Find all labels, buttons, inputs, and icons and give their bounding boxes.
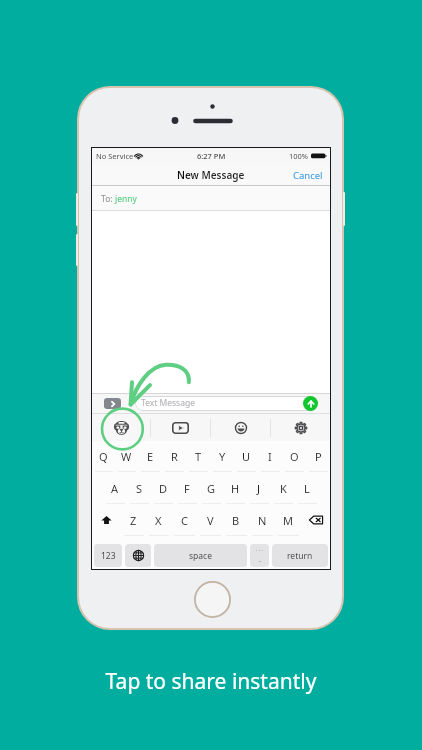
- button[interactable]: I: [258, 441, 282, 472]
- staticText: Y: [219, 449, 226, 464]
- button[interactable]: T: [186, 441, 210, 472]
- staticText: B: [232, 513, 240, 528]
- button[interactable]: G: [199, 472, 223, 504]
- staticText: V: [207, 513, 214, 528]
- staticText: N: [258, 513, 267, 528]
- staticText: J: [257, 481, 261, 496]
- button[interactable]: O: [282, 441, 306, 472]
- button[interactable]: Shift: [92, 504, 121, 536]
- staticText: F: [184, 481, 190, 496]
- staticText: R: [171, 449, 178, 464]
- staticText: O: [290, 449, 299, 464]
- button[interactable]: U: [234, 441, 258, 472]
- button[interactable]: Cancel: [286, 164, 330, 186]
- staticText: K: [280, 481, 287, 496]
- button[interactable]: C: [171, 504, 197, 536]
- button[interactable]: More: [250, 544, 269, 567]
- staticText: jenny: [115, 193, 137, 205]
- button[interactable]: Show apps: [104, 398, 121, 409]
- button[interactable]: M: [275, 504, 301, 536]
- button[interactable]: L: [295, 472, 319, 504]
- button[interactable]: Emoji: [211, 414, 270, 441]
- staticText: T: [195, 449, 202, 464]
- button[interactable]: K: [271, 472, 295, 504]
- button[interactable]: return: [272, 544, 328, 567]
- button[interactable]: Y: [210, 441, 234, 472]
- button[interactable]: E: [138, 441, 162, 472]
- button[interactable]: space: [154, 544, 247, 567]
- button[interactable]: S: [127, 472, 151, 504]
- staticText: return: [287, 550, 313, 562]
- staticText: H: [231, 481, 240, 496]
- staticText: 6:27 PM: [197, 151, 226, 161]
- button[interactable]: W: [115, 441, 138, 472]
- staticText: space: [189, 550, 212, 562]
- staticText: Cancel: [293, 169, 323, 182]
- staticText: E: [147, 449, 154, 464]
- staticText: S: [136, 481, 143, 496]
- staticText: G: [207, 481, 216, 496]
- button[interactable]: Video: [151, 414, 210, 441]
- button[interactable]: V: [197, 504, 223, 536]
- staticText: .: [259, 555, 261, 565]
- staticText: 100%: [289, 151, 309, 161]
- staticText: X: [155, 513, 162, 528]
- staticText: No Service: [96, 151, 134, 161]
- button[interactable]: Settings: [271, 414, 330, 441]
- staticText: 123: [101, 550, 116, 562]
- staticText: Tap to share instantly: [0, 667, 422, 696]
- button[interactable]: N: [249, 504, 275, 536]
- button[interactable]: To:: [92, 186, 330, 211]
- staticText: To:: [101, 193, 115, 205]
- staticText: U: [242, 449, 251, 464]
- button[interactable]: A: [103, 472, 127, 504]
- staticText: L: [304, 481, 310, 496]
- staticText: New Message: [177, 168, 245, 182]
- button[interactable]: D: [151, 472, 175, 504]
- button[interactable]: Stickers: [92, 414, 150, 441]
- staticText: W: [121, 449, 132, 464]
- button[interactable]: B: [223, 504, 249, 536]
- staticText: C: [181, 513, 188, 528]
- button[interactable]: X: [146, 504, 171, 536]
- staticText: Q: [99, 449, 108, 464]
- staticText: Text Message: [141, 397, 195, 409]
- button[interactable]: F: [175, 472, 199, 504]
- staticText: Z: [130, 513, 137, 528]
- button[interactable]: Send: [303, 396, 318, 411]
- button[interactable]: Q: [92, 441, 115, 472]
- staticText: · · ·: [256, 547, 263, 554]
- staticText: I: [268, 449, 272, 464]
- staticText: D: [159, 481, 168, 496]
- button[interactable]: Text Message: [135, 396, 318, 411]
- staticText: A: [111, 481, 119, 496]
- button[interactable]: R: [162, 441, 186, 472]
- button[interactable]: Backspace: [301, 504, 330, 536]
- staticText: M: [283, 513, 293, 528]
- button[interactable]: Emoji keyboard: [125, 544, 151, 567]
- button[interactable]: Z: [121, 504, 146, 536]
- button[interactable]: H: [223, 472, 247, 504]
- staticText: P: [315, 449, 322, 464]
- button[interactable]: P: [306, 441, 330, 472]
- button[interactable]: J: [247, 472, 271, 504]
- button[interactable]: 123: [94, 544, 122, 567]
